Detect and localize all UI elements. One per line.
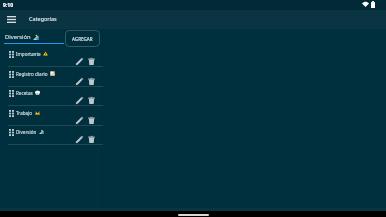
staticText: Diversión [16, 129, 37, 135]
button[interactable]: Trabajo [8, 106, 103, 125]
button[interactable]: Eliminar [87, 116, 96, 125]
button[interactable]: Editar [75, 116, 84, 125]
button[interactable]: Editar [75, 135, 84, 144]
button[interactable]: Eliminar [87, 77, 96, 86]
staticText: Categorías [29, 15, 57, 22]
button[interactable]: Eliminar [87, 57, 96, 66]
staticText: 9:10 [3, 2, 13, 9]
button[interactable]: Diversión [4, 31, 64, 42]
staticText: Diversión [5, 33, 31, 41]
button[interactable]: Registro diario [8, 67, 103, 86]
button[interactable]: Importante [8, 47, 103, 66]
staticText: Importante [16, 51, 41, 57]
staticText: Recetas [16, 90, 33, 96]
button[interactable]: Menú [2, 10, 20, 28]
button[interactable]: Recetas [8, 86, 103, 105]
button[interactable]: AGREGAR [65, 30, 100, 47]
button[interactable]: Editar [75, 77, 84, 86]
button[interactable]: Editar [75, 57, 84, 66]
staticText: Registro diario [16, 71, 48, 77]
button[interactable]: Eliminar [87, 135, 96, 144]
staticText: Trabajo [16, 110, 33, 116]
button[interactable]: Eliminar [87, 96, 96, 105]
button[interactable]: Diversión [8, 125, 103, 144]
staticText: AGREGAR [72, 36, 93, 42]
button[interactable]: Editar [75, 96, 84, 105]
